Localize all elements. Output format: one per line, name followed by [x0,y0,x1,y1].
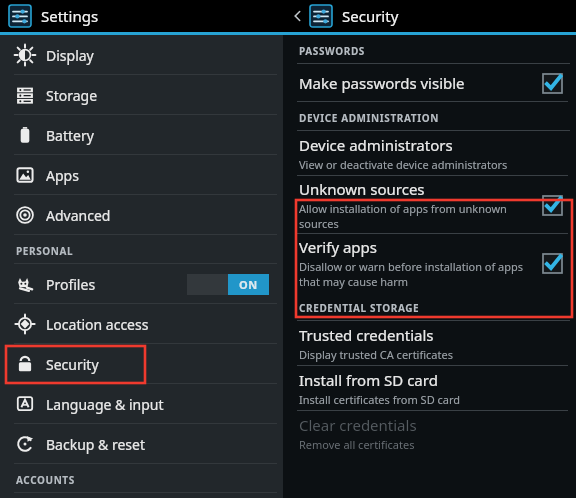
button[interactable]: Trusted credentials [283,321,576,366]
staticText: Battery [46,126,94,145]
button[interactable]: Settings [0,0,283,32]
staticText: Make passwords visible [299,73,465,93]
staticText: Storage [46,86,98,105]
staticText: Device administrators [299,135,453,155]
button[interactable]: Backup & reset [0,424,283,464]
staticText: Location access [46,315,149,334]
button[interactable]: Unknown sources [283,176,576,234]
button[interactable]: Clear credentials [283,411,576,456]
staticText: Verify apps [299,237,377,257]
staticText: ON [239,277,258,292]
staticText: Disallow or warn before installation of … [299,259,533,289]
staticText: Profiles [46,275,96,294]
button[interactable]: Storage [0,75,283,115]
other: Back [291,9,305,23]
staticText: Display [46,46,94,65]
button[interactable]: Make passwords visible [283,64,576,102]
staticText: PASSWORDS [299,44,365,58]
staticText: Unknown sources [299,179,425,199]
button[interactable]: Display [0,35,283,75]
staticText: CREDENTIAL STORAGE [299,301,420,315]
staticText: Display trusted CA certificates [299,347,453,362]
staticText: Remove all certificates [299,437,415,452]
button[interactable]: Back [283,0,576,32]
staticText: Security [342,6,399,26]
button[interactable]: Install from SD card [283,366,576,411]
staticText: Advanced [46,206,111,225]
staticText: Allow installation of apps from unknown … [299,201,533,231]
staticText: Install from SD card [299,370,438,390]
staticText: Clear credentials [299,415,417,435]
staticText: Install certificates from SD card [299,392,461,407]
staticText: View or deactivate device administrators [299,157,508,172]
staticText: Language & input [46,395,164,414]
staticText: ACCOUNTS [16,473,75,487]
button[interactable]: Security [0,344,283,384]
staticText: Security [46,355,99,374]
button[interactable]: Verify apps [283,234,576,292]
button[interactable]: Device administrators [283,131,576,176]
button[interactable]: Language & input [0,384,283,424]
staticText: Trusted credentials [299,325,434,345]
button[interactable]: Advanced [0,195,283,235]
button[interactable]: Apps [0,155,283,195]
button[interactable]: Battery [0,115,283,155]
staticText: DEVICE ADMINISTRATION [299,111,439,125]
staticText: Backup & reset [46,435,145,454]
button[interactable]: Profiles [0,264,283,304]
staticText: Apps [46,166,79,185]
button[interactable]: Location access [0,304,283,344]
staticText: PERSONAL [16,244,74,258]
staticText: Settings [41,6,99,26]
